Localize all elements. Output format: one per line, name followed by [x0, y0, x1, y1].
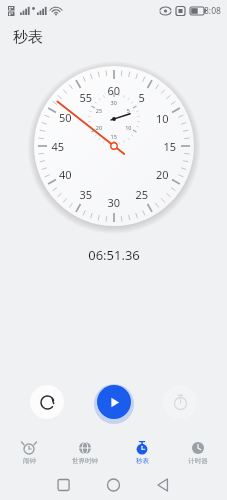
button[interactable]: 世界时钟 — [58, 441, 112, 465]
button[interactable]: Start — [97, 385, 131, 419]
button[interactable]: Reset — [30, 385, 64, 419]
staticText: 8:08 — [204, 5, 221, 17]
button[interactable]: 秒表 — [115, 441, 169, 465]
button[interactable]: Lap — [163, 385, 197, 419]
staticText: 闹钟 — [23, 457, 36, 465]
staticText: 06:51.36 — [88, 246, 140, 264]
button[interactable]: 计时器 — [171, 441, 225, 465]
staticText: 计时器 — [188, 457, 208, 465]
button[interactable]: 闹钟 — [2, 441, 56, 465]
staticText: 秒表 — [136, 457, 149, 465]
staticText: 世界时钟 — [72, 457, 98, 465]
staticText: 秒表 — [13, 28, 43, 47]
